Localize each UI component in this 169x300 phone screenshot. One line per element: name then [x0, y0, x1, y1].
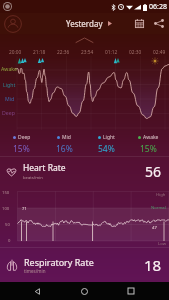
button[interactable]: Awake: [127, 134, 169, 155]
button[interactable]: Home: [70, 282, 98, 300]
button[interactable]: Yesterday: [64, 15, 114, 32]
staticText: 22:36: [57, 49, 70, 56]
staticText: Awake: [1, 65, 17, 72]
staticText: Light: [3, 81, 16, 88]
staticText: Low: [158, 241, 166, 247]
staticText: 100: [2, 206, 10, 212]
staticText: Mid: [5, 95, 15, 102]
staticText: 16%: [56, 143, 73, 155]
staticText: 54%: [98, 143, 115, 155]
button[interactable]: Share: [149, 14, 168, 33]
staticText: times/min: [24, 268, 46, 274]
button[interactable]: Recents: [117, 282, 145, 300]
staticText: 56: [145, 162, 162, 181]
staticText: 15%: [13, 143, 30, 155]
button[interactable]: Respiratory Rate: [5, 248, 162, 282]
staticText: 0: [8, 238, 11, 244]
staticText: 06:28: [149, 2, 167, 12]
staticText: 18: [144, 255, 162, 275]
button[interactable]: Deep: [0, 134, 43, 155]
staticText: Deep: [18, 134, 31, 141]
staticText: 47: [152, 225, 157, 231]
staticText: 15%: [140, 143, 157, 155]
staticText: Normal: [151, 205, 166, 211]
staticText: 23:54: [81, 49, 94, 56]
button[interactable]: Calendar: [130, 14, 149, 33]
staticText: 02:30: [129, 49, 142, 56]
staticText: beats/min: [23, 175, 43, 181]
staticText: Mid: [62, 134, 71, 141]
staticText: Light: [103, 134, 115, 141]
button[interactable]: Heart Rate: [0, 157, 169, 247]
staticText: Deep: [2, 109, 15, 116]
staticText: 50: [5, 222, 10, 228]
button[interactable]: Mid: [43, 134, 85, 155]
button[interactable]: Profile: [3, 14, 23, 34]
staticText: 20:00: [9, 49, 22, 56]
staticText: 150: [2, 190, 10, 196]
button[interactable]: Back: [23, 282, 51, 300]
staticText: Respiratory Rate: [24, 256, 94, 268]
staticText: 71: [22, 206, 27, 212]
staticText: High: [156, 192, 166, 198]
staticText: 21:18: [33, 49, 46, 56]
button[interactable]: Light: [85, 134, 127, 155]
staticText: 02:49: [153, 49, 166, 56]
staticText: Yesterday: [66, 18, 103, 29]
staticText: Heart Rate: [23, 162, 66, 174]
staticText: Awake: [143, 134, 159, 141]
staticText: 01:12: [105, 49, 118, 56]
